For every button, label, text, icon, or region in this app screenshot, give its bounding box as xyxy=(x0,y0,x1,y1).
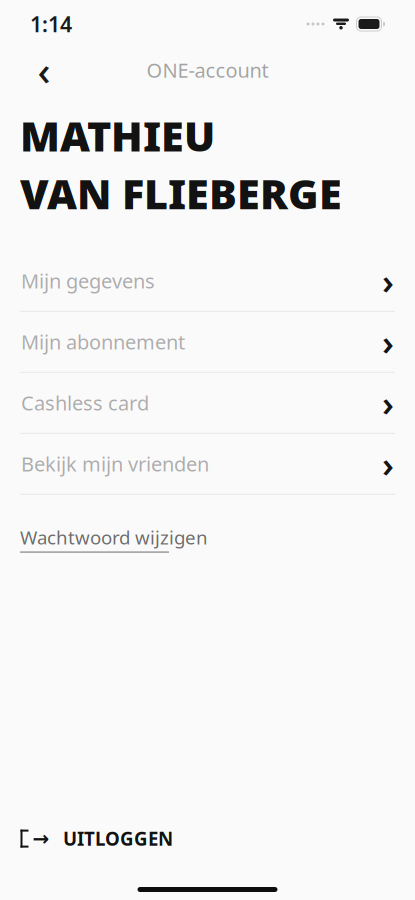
staticText: › xyxy=(382,380,394,426)
staticText: › xyxy=(382,441,394,487)
staticText: Mijn gegevens xyxy=(21,267,155,294)
button[interactable]: Cashless card xyxy=(0,373,415,433)
button[interactable]: Mijn abonnement xyxy=(0,312,415,372)
staticText: Cashless card xyxy=(21,389,149,416)
staticText: ‹ xyxy=(37,43,50,96)
staticText: Bekijk mijn vrienden xyxy=(21,450,209,477)
button[interactable]: → xyxy=(0,816,415,861)
staticText: 1:14 xyxy=(30,10,72,38)
button[interactable]: Wachtwoord wijzigen xyxy=(0,513,415,565)
staticText: → xyxy=(32,827,49,850)
button[interactable]: Bekijk mijn vrienden xyxy=(0,434,415,494)
staticText: Mijn abonnement xyxy=(21,328,185,355)
staticText: ONE-account xyxy=(146,57,268,83)
staticText: › xyxy=(382,319,394,365)
staticText: UITLOGGEN xyxy=(63,826,173,851)
staticText: MATHIEU xyxy=(20,108,215,163)
button[interactable]: Mijn gegevens xyxy=(0,251,415,311)
staticText: VAN FLIEBERGE xyxy=(20,166,342,221)
staticText: Wachtwoord wijzigen xyxy=(20,525,208,550)
button[interactable]: Back xyxy=(22,48,66,92)
staticText: › xyxy=(382,258,394,304)
